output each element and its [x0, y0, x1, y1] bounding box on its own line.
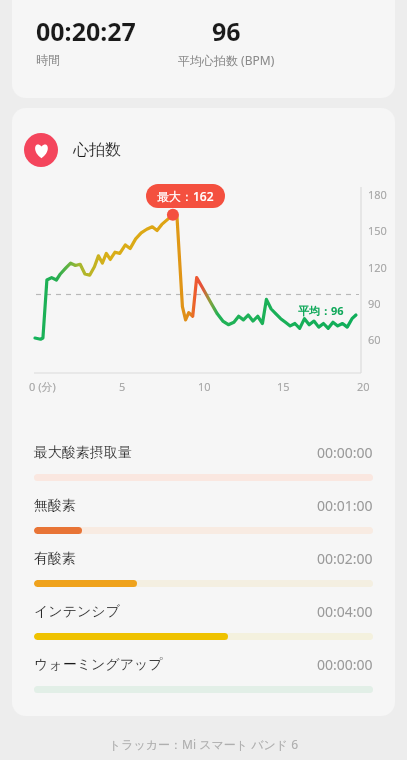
button[interactable]: 最大酸素摂取量: [12, 433, 395, 486]
staticText: ウォーミングアップ: [34, 656, 163, 674]
staticText: 20: [357, 379, 370, 394]
button[interactable]: 有酸素: [12, 539, 395, 592]
staticText: 最大：162: [157, 188, 214, 204]
staticText: インテンシブ: [34, 603, 120, 621]
staticText: 90: [368, 296, 381, 311]
button[interactable]: ウォーミングアップ: [12, 645, 395, 698]
staticText: 平均心拍数 (BPM): [178, 52, 275, 68]
staticText: 00:00:00: [317, 443, 373, 462]
staticText: 有酸素: [34, 550, 76, 568]
staticText: 00:04:00: [317, 602, 373, 621]
staticText: 00:01:00: [317, 496, 373, 515]
button[interactable]: 心拍数: [24, 131, 133, 169]
staticText: トラッカー：Mi スマート バンド 6: [0, 736, 407, 752]
staticText: 時間: [36, 52, 60, 67]
staticText: 120: [368, 260, 387, 275]
staticText: 96: [212, 14, 241, 48]
button[interactable]: 00:20:27: [12, 0, 395, 98]
staticText: 平均：96: [298, 303, 344, 318]
staticText: 150: [368, 223, 387, 238]
staticText: 60: [368, 332, 381, 347]
staticText: 0 (分): [29, 379, 56, 394]
staticText: 最大酸素摂取量: [34, 444, 132, 462]
staticText: 15: [277, 379, 290, 394]
staticText: 無酸素: [34, 497, 76, 515]
staticText: 00:20:27: [36, 14, 136, 48]
staticText: 10: [198, 379, 211, 394]
button[interactable]: インテンシブ: [12, 592, 395, 645]
button[interactable]: 無酸素: [12, 486, 395, 539]
staticText: 180: [368, 187, 387, 202]
staticText: 5: [119, 379, 126, 394]
staticText: 00:00:00: [317, 655, 373, 674]
staticText: 心拍数: [73, 140, 121, 160]
staticText: 00:02:00: [317, 549, 373, 568]
